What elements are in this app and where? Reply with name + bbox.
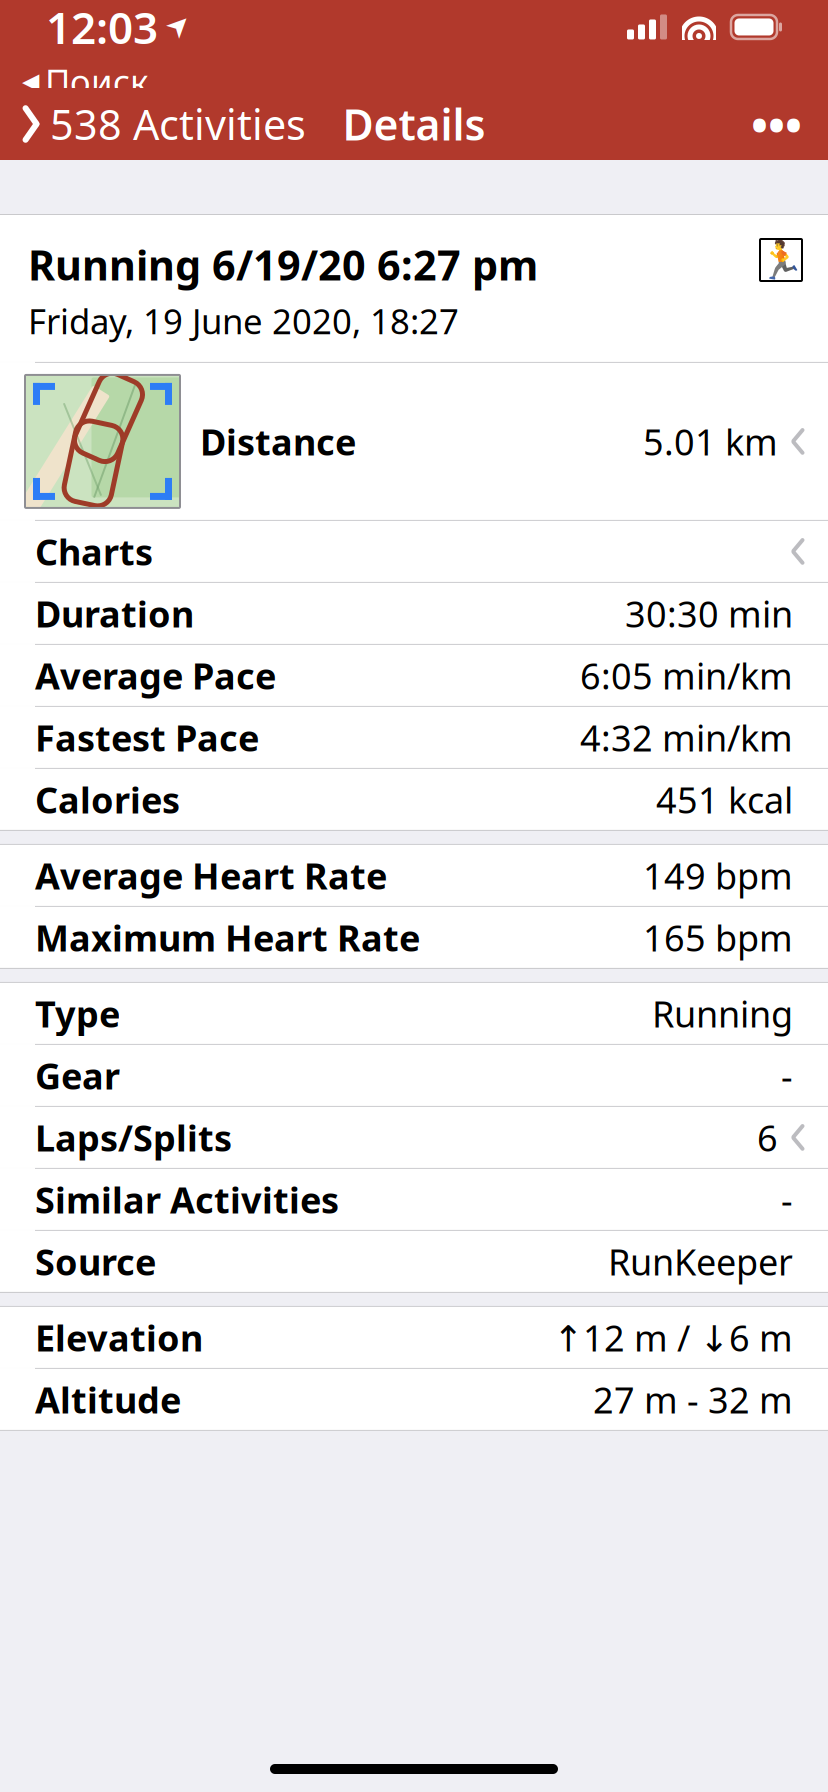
staticText: Altitude <box>35 1375 181 1423</box>
staticText: 6:05 min/km <box>580 651 793 699</box>
staticText: Type <box>35 989 120 1037</box>
button[interactable]: Calories <box>0 769 828 830</box>
staticText: Running 6/19/20 6:27 pm <box>28 237 538 292</box>
staticText: - <box>781 1051 793 1099</box>
button[interactable]: Altitude <box>0 1369 828 1430</box>
staticText: Elevation <box>35 1313 203 1361</box>
staticText: ◀ <box>22 68 39 94</box>
staticText: - <box>781 1175 793 1223</box>
staticText: 5.01 km <box>643 417 778 465</box>
staticText: Friday, 19 June 2020, 18:27 <box>28 298 459 344</box>
button[interactable]: Fastest Pace <box>0 707 828 768</box>
staticText: Поиск <box>45 58 148 104</box>
button[interactable]: Type <box>0 983 828 1044</box>
staticText: Similar Activities <box>35 1175 339 1223</box>
staticText: Details <box>342 96 485 152</box>
staticText: 27 m - 32 m <box>593 1375 793 1423</box>
button[interactable]: Charts <box>0 521 828 582</box>
staticText: 30:30 min <box>625 589 793 637</box>
staticText: 165 bpm <box>643 913 793 961</box>
button[interactable]: ◀ <box>0 56 148 104</box>
staticText: Calories <box>35 775 180 823</box>
button[interactable]: Duration <box>0 583 828 644</box>
staticText: Distance <box>200 417 356 465</box>
button[interactable]: Average Pace <box>0 645 828 706</box>
button[interactable]: Source <box>0 1231 828 1292</box>
staticText: 12:03 <box>46 0 158 56</box>
staticText: Maximum Heart Rate <box>35 913 420 961</box>
staticText: ••• <box>751 94 802 154</box>
staticText: ↑12 m / ↓6 m <box>553 1313 793 1361</box>
staticText: 451 kcal <box>656 775 793 823</box>
staticText: Running <box>652 989 793 1037</box>
staticText: ➤ <box>166 8 191 42</box>
staticText: Gear <box>35 1051 120 1099</box>
staticText: 🏃 <box>758 239 804 281</box>
staticText: Laps/Splits <box>35 1113 232 1161</box>
button[interactable]: Gear <box>0 1045 828 1106</box>
button[interactable]: Similar Activities <box>0 1169 828 1230</box>
staticText: RunKeeper <box>608 1237 793 1285</box>
staticText: Duration <box>35 589 194 637</box>
staticText: Fastest Pace <box>35 713 259 761</box>
staticText: 538 Activities <box>50 97 306 151</box>
button[interactable]: Maximum Heart Rate <box>0 907 828 968</box>
staticText: 6 <box>757 1113 778 1161</box>
button[interactable]: More options <box>725 84 828 164</box>
button[interactable]: Average Heart Rate <box>0 845 828 906</box>
staticText: 4:32 min/km <box>580 713 793 761</box>
staticText: Charts <box>35 527 153 575</box>
button[interactable]: Distance <box>0 363 828 520</box>
staticText: Average Pace <box>35 651 276 699</box>
staticText: Source <box>35 1237 156 1285</box>
staticText: Average Heart Rate <box>35 851 387 899</box>
button[interactable]: Laps/Splits <box>0 1107 828 1168</box>
button[interactable]: 538 Activities <box>0 87 306 161</box>
staticText: 149 bpm <box>643 851 793 899</box>
button[interactable]: Elevation <box>0 1307 828 1368</box>
